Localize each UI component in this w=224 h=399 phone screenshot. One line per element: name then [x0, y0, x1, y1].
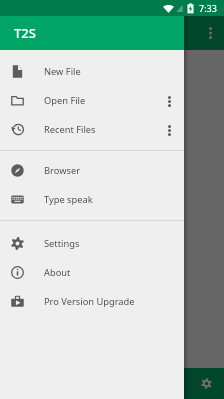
staticText: Type speak [44, 193, 93, 206]
button[interactable]: Open File [0, 86, 184, 115]
button[interactable]: Settings [195, 372, 218, 395]
button[interactable]: Browser [0, 156, 184, 185]
button[interactable]: About [0, 258, 184, 287]
button[interactable]: More options [198, 21, 222, 45]
button[interactable]: More options for Open File [158, 90, 180, 112]
staticText: Settings [44, 237, 80, 250]
staticText: Open File [44, 94, 86, 107]
button[interactable]: Recent Files [0, 115, 184, 144]
button[interactable]: Type speak [0, 185, 184, 214]
button[interactable]: Settings [0, 229, 184, 258]
staticText: About [44, 266, 71, 279]
staticText: Browser [44, 164, 80, 177]
button[interactable]: More options for Recent Files [158, 119, 180, 141]
staticText: Pro Version Upgrade [44, 295, 135, 308]
button[interactable]: Pro Version Upgrade [0, 287, 184, 316]
staticText: New File [44, 65, 81, 78]
button[interactable]: New File [0, 57, 184, 86]
staticText: 7:33 [199, 2, 217, 14]
staticText: T2S [14, 24, 36, 42]
staticText: Recent Files [44, 123, 96, 136]
